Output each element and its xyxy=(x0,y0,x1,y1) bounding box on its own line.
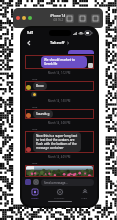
staticText: ryan xyxy=(32,127,38,130)
button[interactable]: Send a message... xyxy=(41,179,94,186)
staticText: Takeoff xyxy=(50,40,65,45)
staticText: 9:41 xyxy=(27,31,34,35)
staticText: iOS 16.2 xyxy=(53,18,63,22)
staticText: Chamber xyxy=(54,196,65,199)
button[interactable]: Videos xyxy=(22,187,47,201)
button[interactable]: Sounds g xyxy=(33,110,53,118)
button[interactable]: Takeoff xyxy=(50,40,70,45)
staticText: ryan xyxy=(32,105,38,108)
button[interactable]: Screenshot xyxy=(91,14,100,23)
button[interactable]: Chamber xyxy=(47,187,72,201)
staticText: We should market to Greek lfe xyxy=(44,58,84,66)
staticText: iPhone 14 xyxy=(50,14,66,18)
staticText: Now this is a super long text to test th… xyxy=(36,134,78,150)
staticText: March 14, 1:12 PM xyxy=(48,71,71,75)
button[interactable]: Add attachment xyxy=(25,179,31,185)
staticText: ryan xyxy=(32,161,38,164)
staticText: Send a message... xyxy=(44,181,68,185)
button[interactable]: Login xyxy=(72,187,97,201)
staticText: Booo xyxy=(36,84,44,88)
button[interactable]: Photo message xyxy=(26,166,93,176)
button[interactable]: Rotate xyxy=(78,14,87,23)
button[interactable]: Camera xyxy=(33,179,39,185)
staticText: March 14, 3:08 PM xyxy=(48,121,71,125)
staticText: Login xyxy=(81,196,88,199)
staticText: March 14, 4:09 PM xyxy=(48,155,71,159)
button[interactable]: Booo xyxy=(33,82,47,90)
button[interactable]: Now this is a super long text to test th… xyxy=(33,132,81,152)
staticText: March 14, 1:50 PM xyxy=(48,99,71,103)
button[interactable]: Home xyxy=(65,14,74,23)
button[interactable]: Back xyxy=(25,39,33,47)
button[interactable]: We should market to Greek lfe xyxy=(41,56,87,68)
staticText: ryan xyxy=(32,77,38,80)
staticText: Sounds g xyxy=(36,112,50,116)
staticText: Videos xyxy=(31,196,39,199)
